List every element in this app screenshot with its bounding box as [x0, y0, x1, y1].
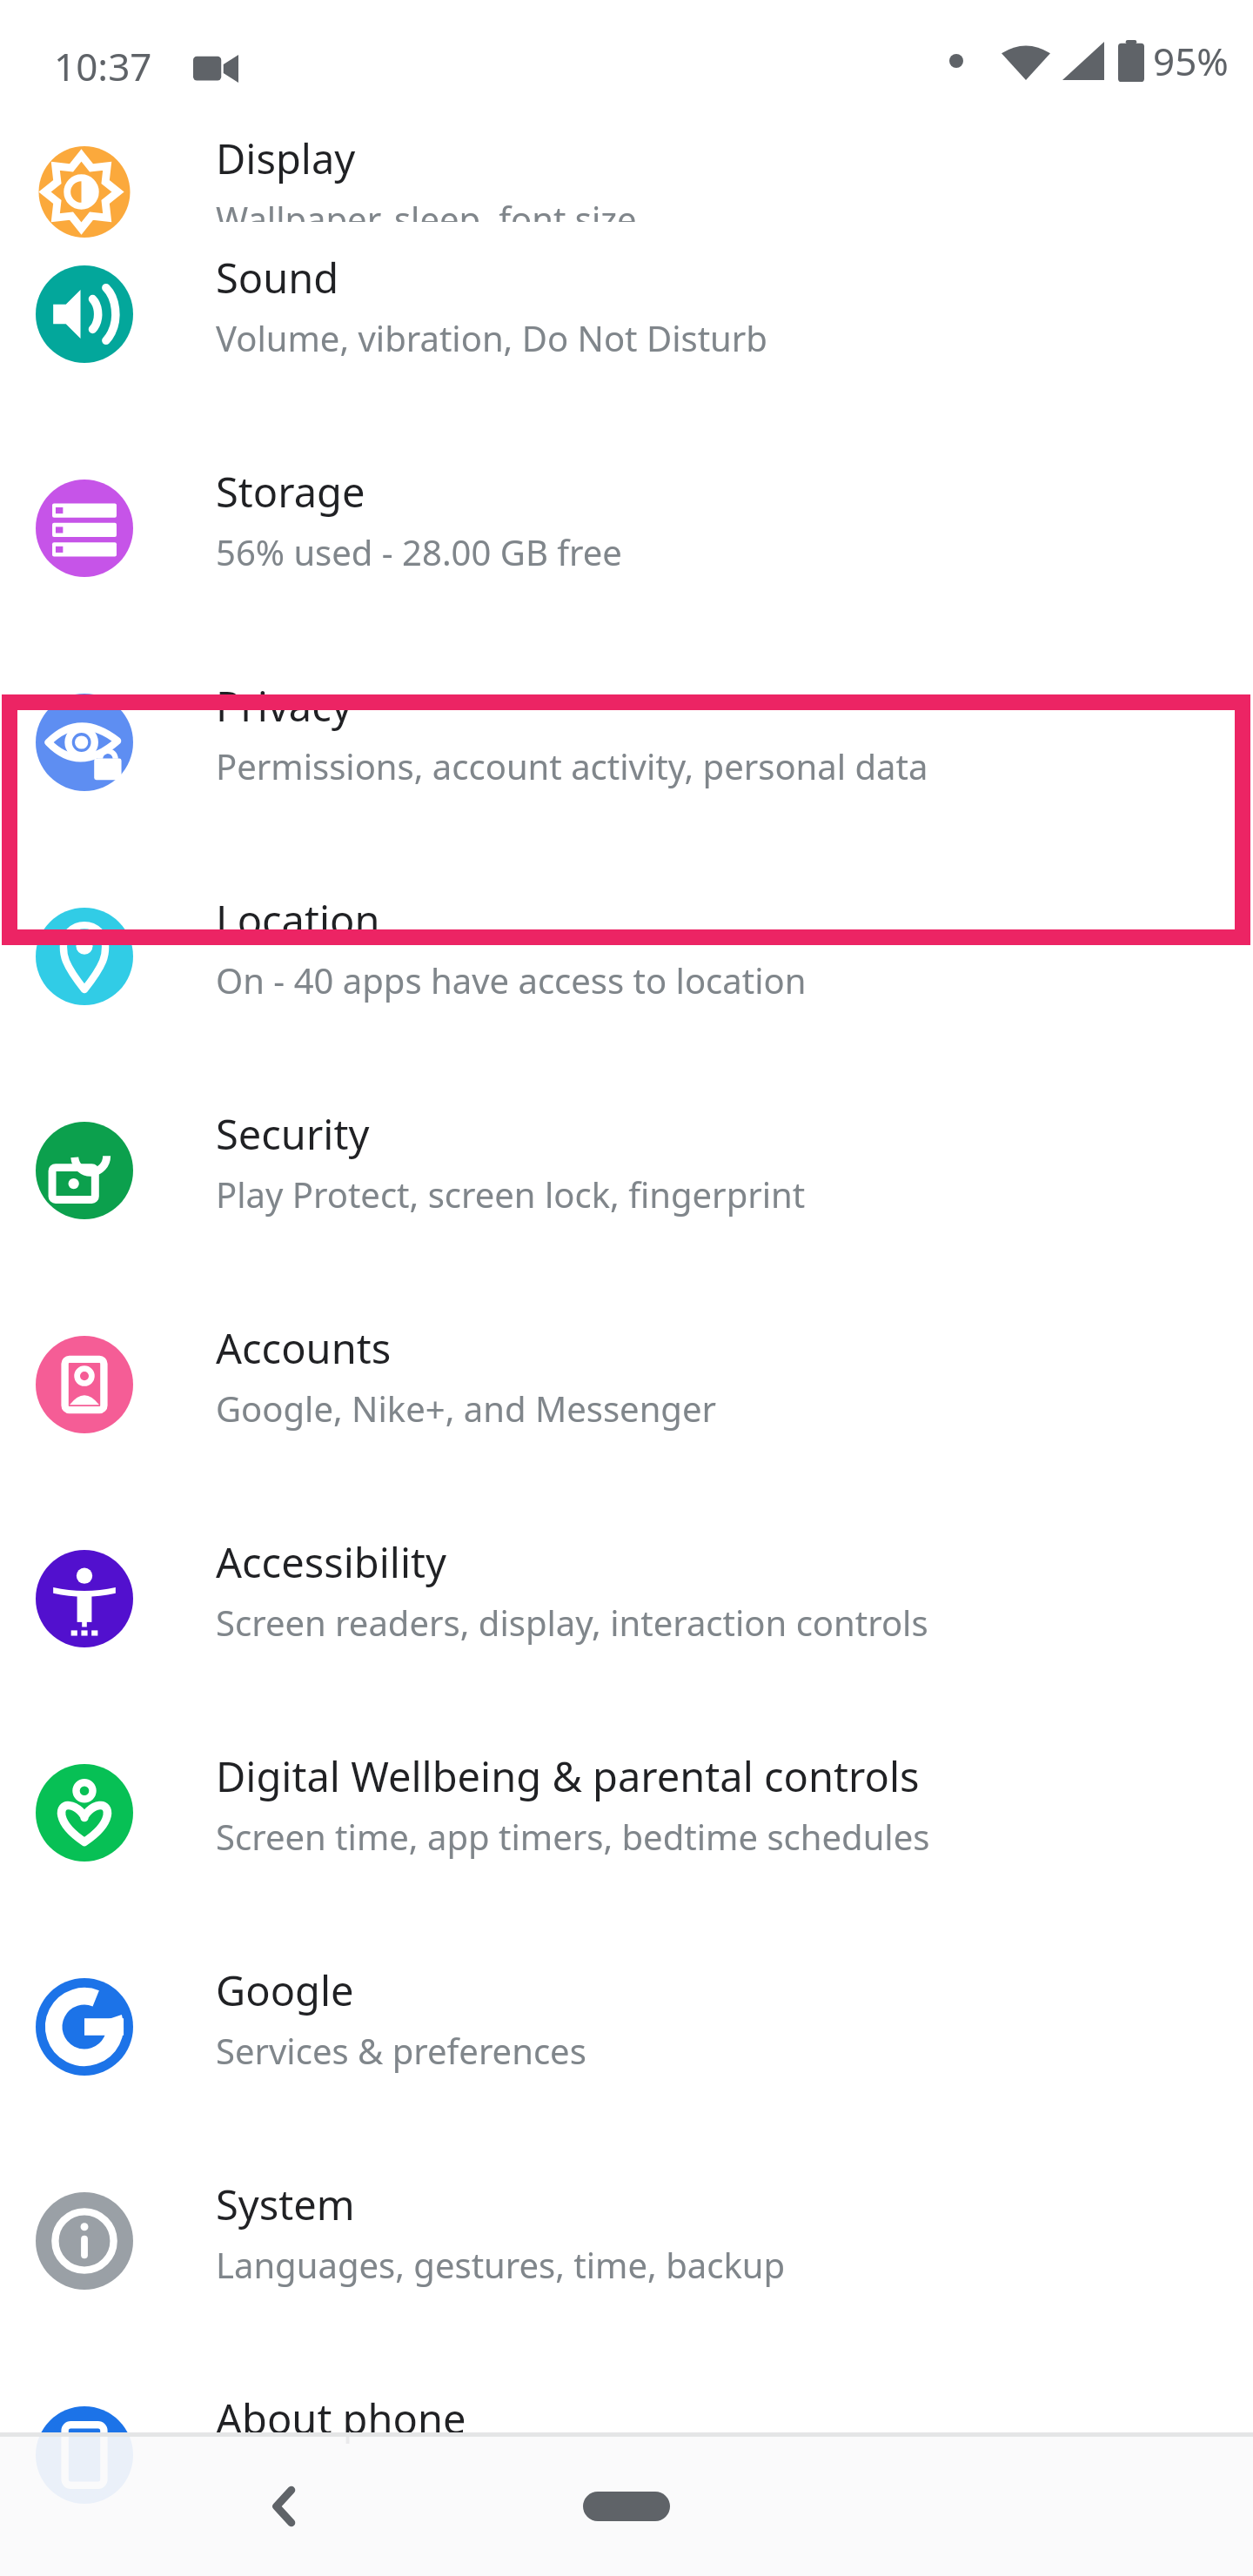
staticText: Security — [216, 1106, 370, 1162]
button[interactable]: Sound — [0, 213, 1253, 427]
staticText: Play Protect, screen lock, fingerprint — [216, 1171, 806, 1218]
staticText: Privacy — [216, 678, 352, 734]
staticText: 10:37 — [54, 40, 152, 92]
staticText: Services & preferences — [216, 2027, 586, 2074]
staticText: Location — [216, 892, 380, 948]
staticText: Languages, gestures, time, backup — [216, 2241, 786, 2288]
button[interactable]: Digital Wellbeing & parental controls — [0, 1712, 1253, 1926]
button[interactable]: Back — [251, 2472, 318, 2540]
button[interactable]: Display — [0, 0, 1253, 91]
staticText: 95% — [1153, 35, 1229, 87]
button[interactable]: Google — [0, 1926, 1253, 2140]
button[interactable]: Location — [0, 855, 1253, 1070]
staticText: Display — [216, 131, 356, 186]
staticText: Google, Nike+, and Messenger — [216, 1385, 717, 1432]
staticText: Accounts — [216, 1320, 392, 1376]
button[interactable]: Privacy — [0, 641, 1253, 855]
button[interactable]: About phone — [0, 2354, 1253, 2568]
button[interactable]: Storage — [0, 427, 1253, 641]
staticText: Storage — [216, 464, 365, 520]
button[interactable]: Security — [0, 1070, 1253, 1284]
button[interactable]: Accessibility — [0, 1498, 1253, 1712]
staticText: Screen readers, display, interaction con… — [216, 1599, 928, 1646]
staticText: About phone — [216, 2391, 466, 2446]
button[interactable]: Accounts — [0, 1284, 1253, 1498]
button[interactable]: Home — [583, 2492, 670, 2521]
staticText: Google — [216, 1962, 354, 2018]
staticText: Permissions, account activity, personal … — [216, 742, 928, 789]
staticText: Volume, vibration, Do Not Disturb — [216, 314, 767, 361]
button[interactable]: System — [0, 2140, 1253, 2354]
staticText: 56% used - 28.00 GB free — [216, 528, 622, 575]
staticText: Accessibility — [216, 1534, 447, 1590]
staticText: Wallpaper, sleep, font size — [216, 195, 637, 222]
staticText: Sound — [216, 250, 339, 305]
staticText: Digital Wellbeing & parental controls — [216, 1748, 920, 1804]
staticText: Screen time, app timers, bedtime schedul… — [216, 1813, 930, 1860]
staticText: System — [216, 2177, 355, 2232]
staticText: On - 40 apps have access to location — [216, 956, 807, 1003]
